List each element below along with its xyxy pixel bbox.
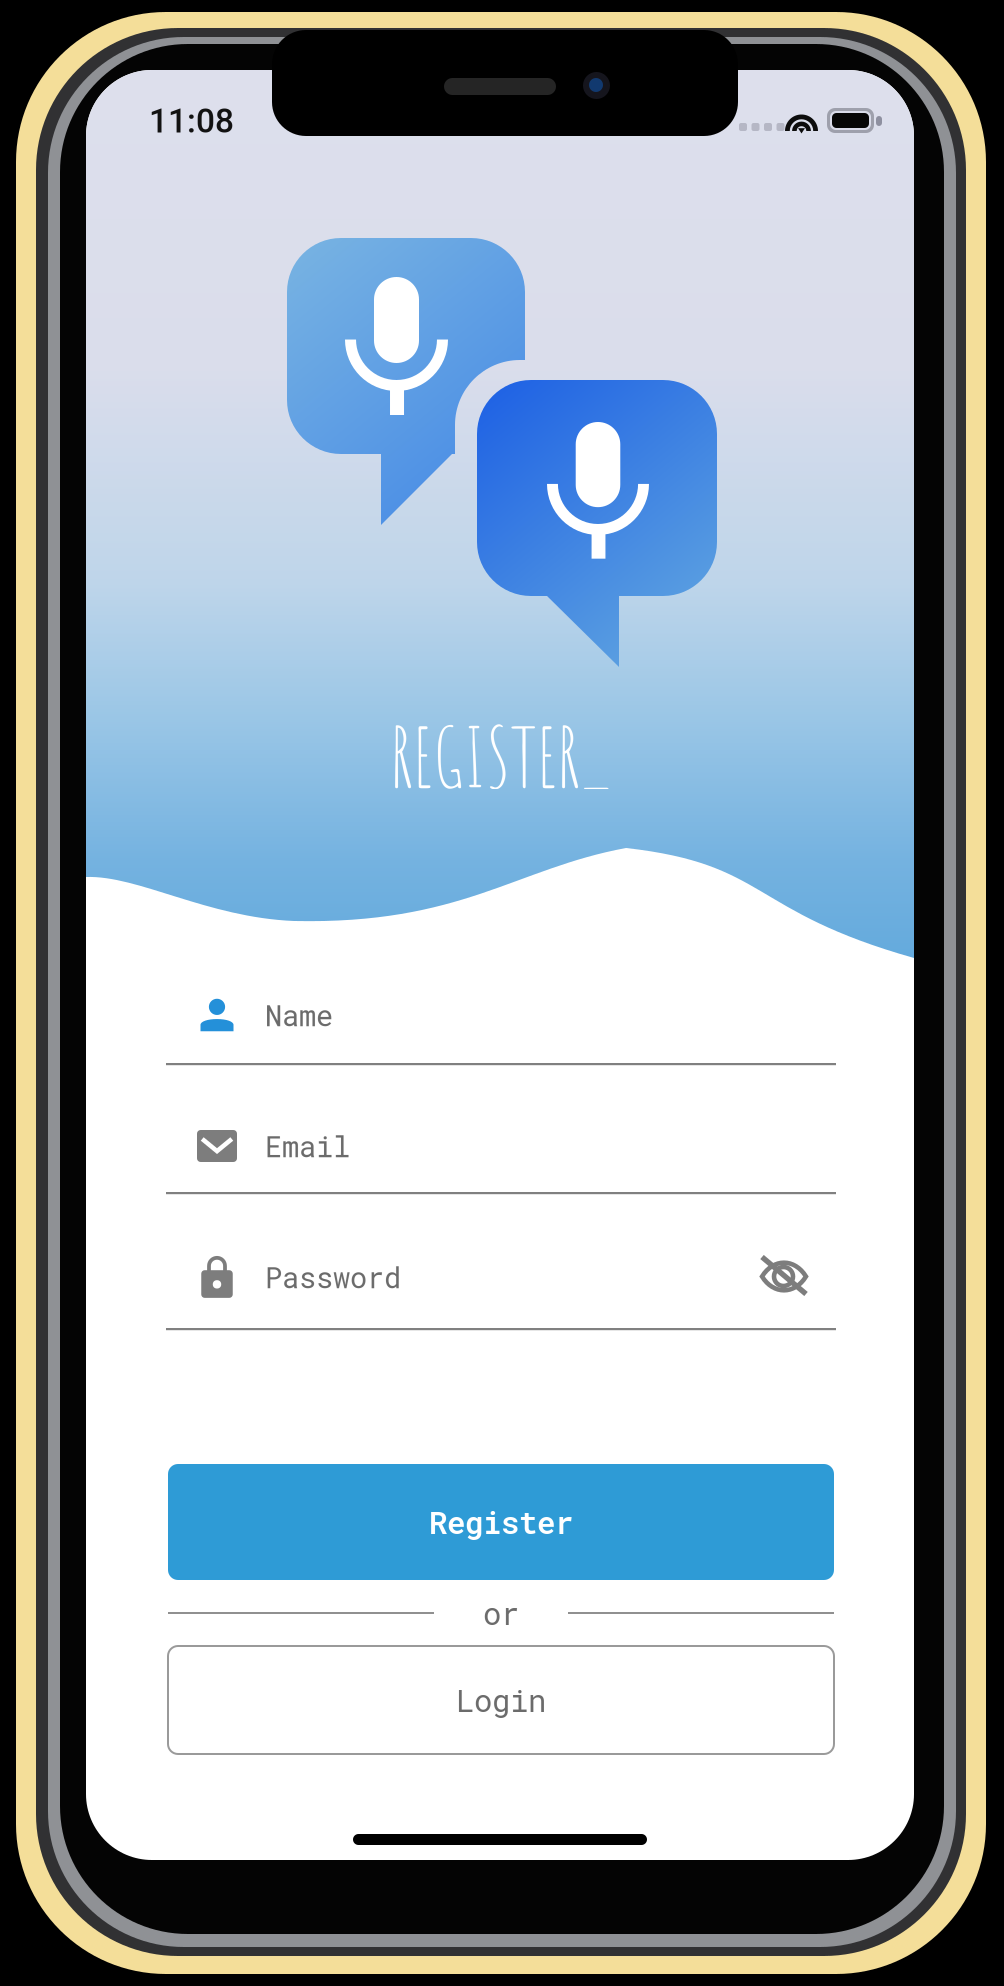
button[interactable]: Login bbox=[168, 1646, 834, 1754]
staticText: Email bbox=[265, 1127, 350, 1165]
staticText: 11:08 bbox=[149, 101, 234, 141]
staticText: Name bbox=[265, 996, 333, 1034]
staticText: or bbox=[483, 1593, 519, 1633]
button[interactable]: Show password bbox=[748, 1246, 820, 1306]
staticText: REGISTER_ bbox=[390, 705, 610, 807]
staticText: Password bbox=[265, 1258, 401, 1296]
button[interactable]: Name bbox=[86, 981, 836, 1065]
staticText: Register bbox=[429, 1502, 573, 1542]
button[interactable]: Password bbox=[86, 1243, 836, 1330]
button[interactable]: Email bbox=[86, 1112, 836, 1194]
button[interactable]: Register bbox=[168, 1464, 834, 1580]
staticText: Login bbox=[456, 1680, 546, 1720]
